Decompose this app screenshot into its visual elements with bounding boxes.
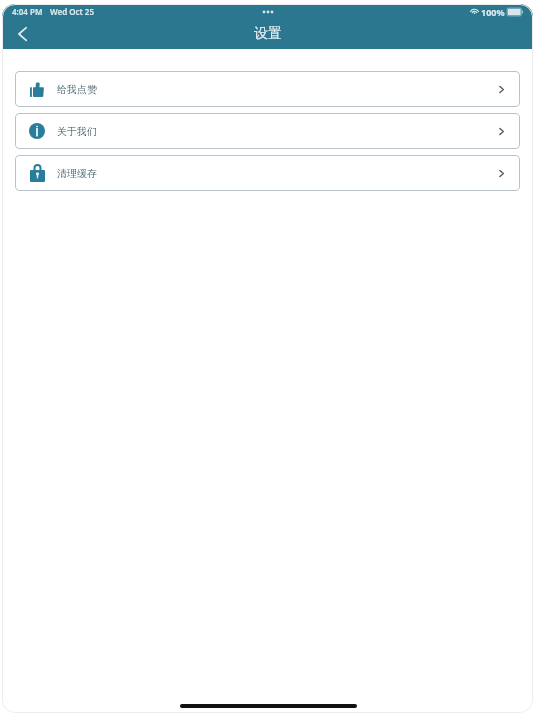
button[interactable]: 关于我们 <box>15 113 520 149</box>
staticText: 设置 <box>254 25 282 43</box>
staticText: 给我点赞 <box>57 83 97 96</box>
button[interactable]: 给我点赞 <box>15 71 520 107</box>
staticText: Wed Oct 25 <box>50 6 95 17</box>
staticText: 100% <box>481 6 505 18</box>
staticText: 4:04 PM <box>12 6 43 17</box>
staticText: 清理缓存 <box>57 167 97 180</box>
staticText: 关于我们 <box>57 125 97 138</box>
button[interactable]: Back <box>8 20 36 48</box>
button[interactable]: 清理缓存 <box>15 155 520 191</box>
